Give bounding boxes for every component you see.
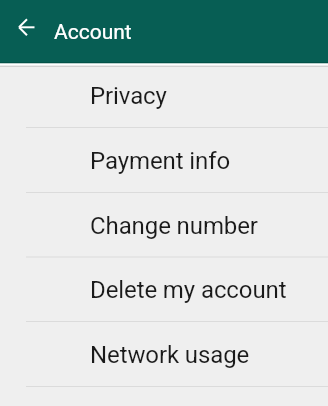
button[interactable]: Change number xyxy=(0,193,328,256)
staticText: Change number xyxy=(90,212,258,240)
button[interactable]: Privacy xyxy=(0,62,328,127)
staticText: Account xyxy=(54,20,132,45)
staticText: Privacy xyxy=(90,82,167,110)
button[interactable]: Payment info xyxy=(0,128,328,192)
button[interactable]: Navigate up xyxy=(4,5,48,49)
staticText: Network usage xyxy=(90,341,250,369)
staticText: Payment info xyxy=(90,147,230,175)
staticText: Delete my account xyxy=(90,276,287,304)
button[interactable]: Network usage xyxy=(0,322,328,386)
button[interactable]: Delete my account xyxy=(0,257,328,321)
